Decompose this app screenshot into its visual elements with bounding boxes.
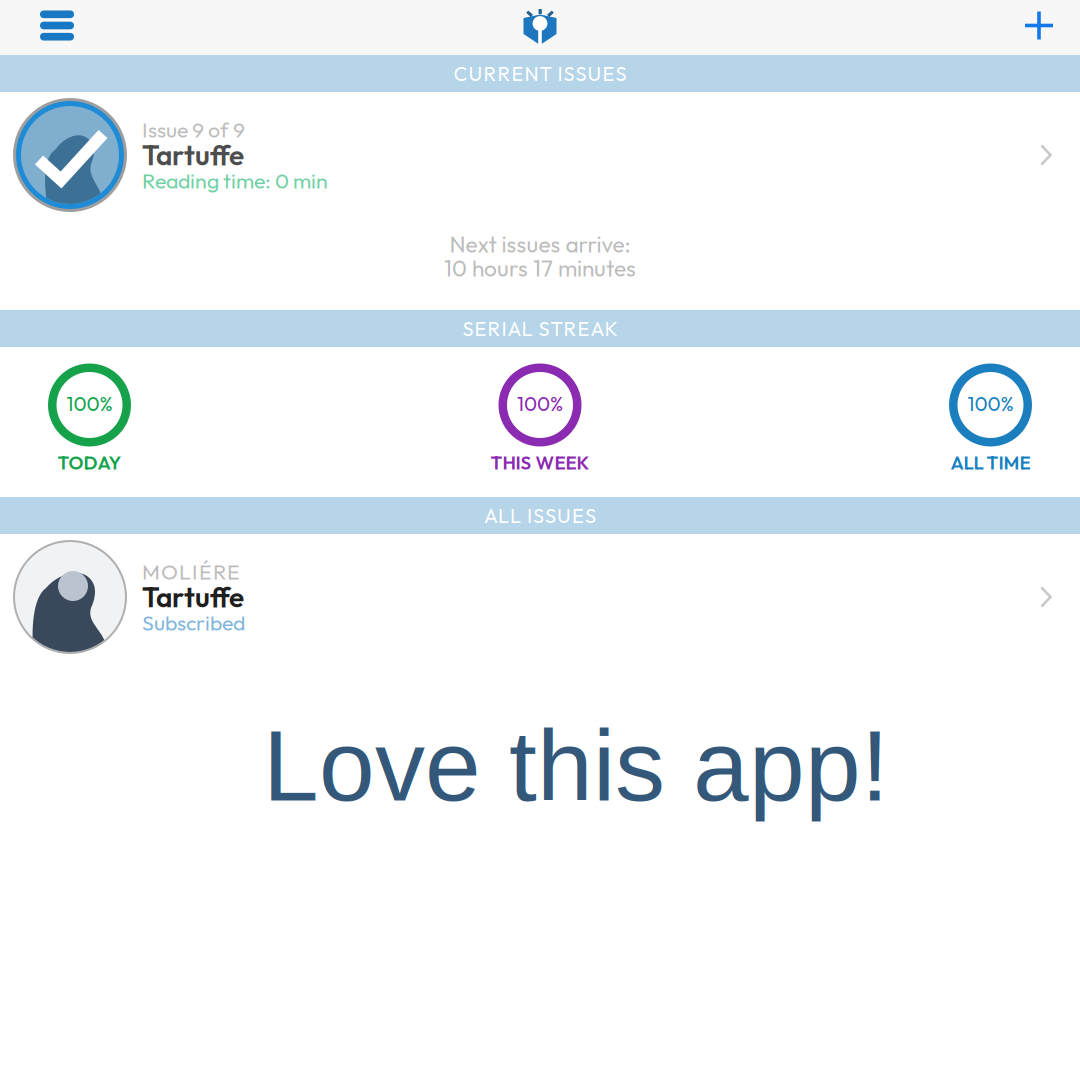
staticText: 100% bbox=[517, 391, 563, 416]
staticText: ALL TIME bbox=[950, 451, 1030, 474]
button[interactable]: Menu bbox=[0, 0, 94, 55]
staticText: 100% bbox=[967, 391, 1013, 416]
staticText: A L L I S S U E S bbox=[484, 503, 596, 528]
staticText: 100% bbox=[66, 391, 112, 416]
staticText: Issue 9 of 9 bbox=[142, 116, 245, 143]
staticText: Reading time: 0 min bbox=[142, 167, 328, 194]
staticText: S E R I A L S T R E A K bbox=[462, 316, 617, 341]
staticText: Subscribed bbox=[142, 609, 245, 636]
staticText: TODAY bbox=[57, 451, 121, 474]
staticText: Love this app! bbox=[263, 710, 889, 822]
staticText: THIS WEEK bbox=[490, 451, 589, 474]
button[interactable]: Issue 9 of 9 bbox=[0, 92, 1080, 218]
button[interactable]: Add bbox=[1005, 0, 1080, 55]
staticText: Tartuffe bbox=[142, 579, 244, 615]
staticText: 10 hours 17 minutes bbox=[444, 254, 636, 282]
staticText: Tartuffe bbox=[142, 137, 244, 173]
staticText: M O L I É R E bbox=[142, 558, 240, 585]
staticText: C U R R E N T I S S U E S bbox=[453, 61, 626, 86]
button[interactable]: M O L I É R E bbox=[0, 534, 1080, 660]
staticText: Next issues arrive: bbox=[449, 230, 630, 258]
